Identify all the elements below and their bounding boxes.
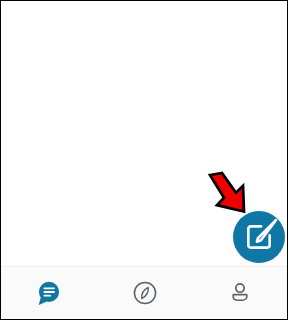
button[interactable]: Explore xyxy=(97,266,192,319)
button[interactable]: Profile xyxy=(192,266,287,319)
button[interactable]: Chats xyxy=(1,266,97,319)
button[interactable]: Compose new message xyxy=(233,211,285,263)
